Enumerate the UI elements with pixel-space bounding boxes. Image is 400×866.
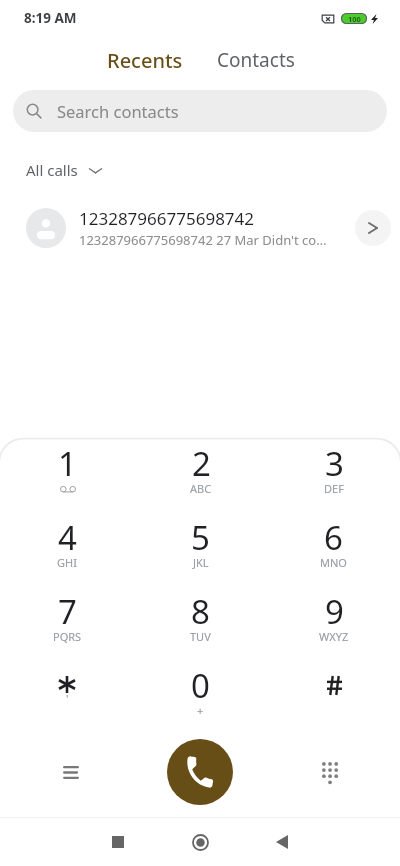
staticText: JKL — [193, 555, 209, 570]
staticText: ABC — [190, 481, 212, 496]
button[interactable]: 5 — [134, 515, 267, 589]
staticText: + — [197, 703, 204, 718]
button[interactable]: Contacts — [207, 39, 305, 81]
staticText: 6 — [324, 515, 343, 560]
button[interactable]: 0 — [134, 663, 267, 737]
button[interactable]: Back — [242, 818, 325, 866]
button[interactable]: Recent apps — [76, 818, 159, 866]
staticText: GHI — [57, 555, 77, 570]
button[interactable]: All calls — [20, 156, 109, 184]
staticText: 7 — [58, 589, 77, 634]
button[interactable] — [267, 663, 400, 737]
staticText: Recents — [107, 47, 183, 74]
button[interactable]: 7 — [0, 589, 134, 663]
button[interactable]: Call — [167, 739, 233, 805]
staticText: 2 — [192, 441, 211, 486]
staticText: Search contacts — [57, 100, 179, 122]
staticText: 5 — [191, 515, 210, 560]
button[interactable]: 1 — [0, 441, 134, 515]
staticText: Contacts — [217, 47, 295, 73]
button[interactable]: Recents — [97, 39, 193, 82]
staticText: 0 — [191, 663, 210, 708]
staticText: 123287966775698742 — [79, 207, 255, 230]
button[interactable]: Search contacts — [13, 90, 387, 132]
staticText: MNO — [320, 555, 347, 570]
button[interactable]: 3 — [267, 441, 400, 515]
staticText: All calls — [26, 160, 78, 180]
staticText: DEF — [324, 481, 344, 496]
staticText: PQRS — [53, 629, 82, 644]
button[interactable]: 2 — [134, 441, 267, 515]
staticText: 9 — [325, 589, 344, 634]
staticText: 8 — [191, 589, 210, 634]
staticText: TUV — [190, 629, 211, 644]
staticText: 1 — [58, 441, 77, 486]
staticText: ' — [66, 691, 69, 706]
staticText: 100 — [348, 14, 361, 24]
button[interactable]: 9 — [267, 589, 400, 663]
button[interactable]: Home — [159, 818, 242, 866]
button[interactable]: 4 — [0, 515, 134, 589]
button[interactable]: 123287966775698742 — [0, 197, 400, 259]
staticText: 8:19 AM — [24, 9, 77, 27]
button[interactable]: Dialpad — [293, 742, 365, 800]
button[interactable]: ' — [0, 663, 134, 737]
staticText: 4 — [58, 515, 77, 560]
button[interactable]: Menu — [35, 743, 107, 801]
button[interactable]: Call details — [355, 210, 391, 246]
button[interactable]: 6 — [267, 515, 400, 589]
staticText: WXYZ — [319, 629, 349, 644]
staticText: 3 — [325, 441, 344, 486]
button[interactable]: 8 — [134, 589, 267, 663]
staticText: 123287966775698742 27 Mar Didn't co… — [79, 231, 327, 249]
